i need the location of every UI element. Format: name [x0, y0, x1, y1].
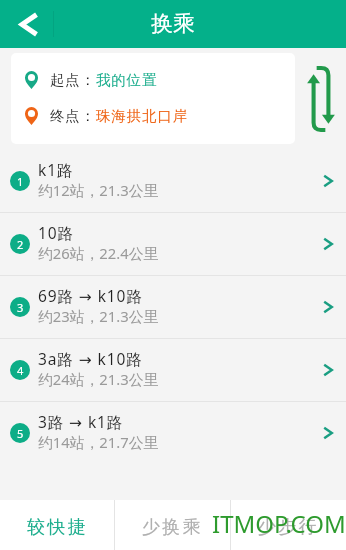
staticText: 约24站，21.3公里 — [38, 369, 159, 389]
button[interactable]: 2 — [0, 213, 346, 275]
staticText: 4 — [17, 363, 24, 378]
button[interactable]: 少步行 — [231, 500, 346, 550]
staticText: ITMOP.COM — [212, 507, 346, 540]
staticText: 2 — [17, 237, 24, 252]
button[interactable]: 少换乘 — [115, 500, 230, 550]
button[interactable]: 较快捷 — [0, 500, 114, 550]
staticText: 起点： — [50, 71, 96, 89]
staticText: 珠海拱北口岸 — [96, 107, 188, 125]
staticText: 69路 → k10路 — [38, 285, 143, 306]
button[interactable]: 5 — [0, 402, 346, 464]
staticText: 3a路 → k10路 — [38, 348, 143, 369]
staticText: 约26站，22.4公里 — [38, 243, 159, 263]
button[interactable]: Swap start and end — [303, 64, 339, 134]
staticText: 我的位置 — [96, 71, 158, 89]
button[interactable]: 3 — [0, 276, 346, 338]
staticText: 5 — [17, 426, 24, 441]
staticText: 10路 — [38, 222, 74, 243]
staticText: 约23站，21.3公里 — [38, 306, 159, 326]
button[interactable]: Back — [0, 0, 52, 48]
staticText: 约14站，21.7公里 — [38, 432, 159, 452]
button[interactable]: 1 — [0, 150, 346, 212]
staticText: 3 — [17, 300, 24, 315]
staticText: k1路 — [38, 159, 74, 180]
staticText: 换乘 — [151, 10, 195, 38]
button[interactable]: 4 — [0, 339, 346, 401]
staticText: 3路 → k1路 — [38, 411, 124, 432]
staticText: 较快捷 — [27, 516, 88, 539]
staticText: 少步行 — [258, 516, 319, 539]
staticText: 终点： — [50, 107, 96, 125]
staticText: 约12站，21.3公里 — [38, 180, 159, 200]
staticText: 少换乘 — [142, 516, 203, 539]
staticText: 1 — [17, 174, 24, 189]
button[interactable]: 起点： — [11, 53, 295, 144]
